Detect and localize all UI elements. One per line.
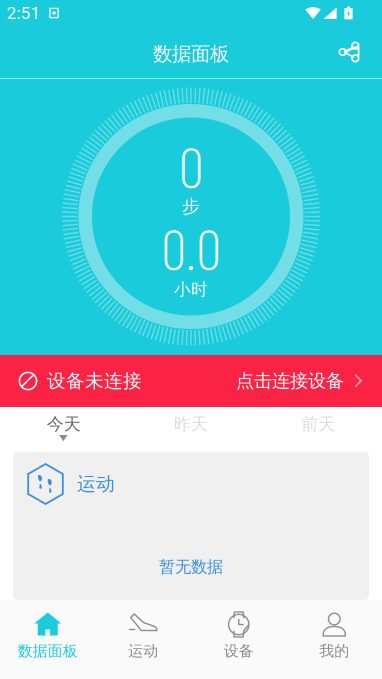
staticText: 今天 bbox=[47, 413, 81, 435]
staticText: 设备 bbox=[224, 642, 254, 660]
button[interactable]: 昨天 bbox=[127, 407, 255, 452]
staticText: 点击连接设备 bbox=[236, 369, 344, 392]
staticText: 前天 bbox=[301, 413, 335, 435]
staticText: 0 bbox=[179, 137, 202, 201]
staticText: 数据面板 bbox=[153, 42, 229, 66]
staticText: 我的 bbox=[319, 642, 349, 660]
button[interactable]: 设备未连接 bbox=[0, 355, 382, 407]
button[interactable]: 今天 bbox=[0, 407, 127, 452]
button[interactable]: 前天 bbox=[255, 407, 382, 452]
staticText: 步 bbox=[182, 195, 200, 218]
staticText: 运动 bbox=[128, 642, 158, 660]
button[interactable]: Share bbox=[327, 26, 371, 78]
staticText: 昨天 bbox=[174, 413, 208, 435]
staticText: 0.0 bbox=[162, 219, 220, 283]
button[interactable]: 我的 bbox=[286, 600, 382, 679]
staticText: 数据面板 bbox=[18, 642, 78, 660]
button[interactable]: 设备 bbox=[191, 600, 286, 679]
staticText: 设备未连接 bbox=[47, 369, 142, 393]
button[interactable]: 运动 bbox=[95, 600, 191, 679]
button[interactable]: 数据面板 bbox=[0, 600, 95, 679]
staticText: 2:51 bbox=[6, 3, 40, 23]
staticText: 暂无数据 bbox=[159, 556, 223, 577]
staticText: 运动 bbox=[77, 472, 115, 496]
staticText: 小时 bbox=[174, 279, 208, 300]
